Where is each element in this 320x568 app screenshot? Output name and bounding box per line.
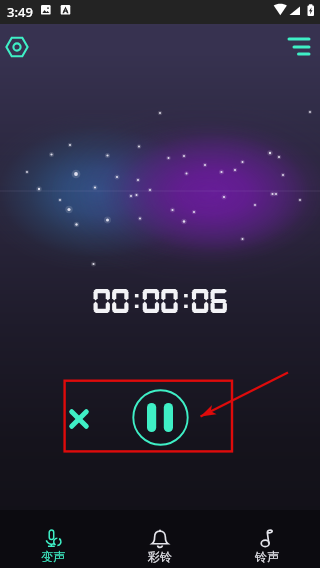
staticText: 3:49: [7, 3, 33, 21]
button[interactable]: 变声: [0, 510, 106, 564]
staticText: 铃声: [255, 549, 279, 564]
button[interactable]: Pause: [132, 389, 189, 446]
button[interactable]: 彩铃: [106, 510, 213, 564]
staticText: 变声: [41, 549, 65, 564]
button[interactable]: 铃声: [213, 510, 320, 564]
button[interactable]: Cancel: [59, 400, 98, 439]
button[interactable]: Logo: [1, 31, 33, 63]
button[interactable]: Menu: [282, 30, 314, 60]
staticText: 彩铃: [148, 549, 172, 564]
